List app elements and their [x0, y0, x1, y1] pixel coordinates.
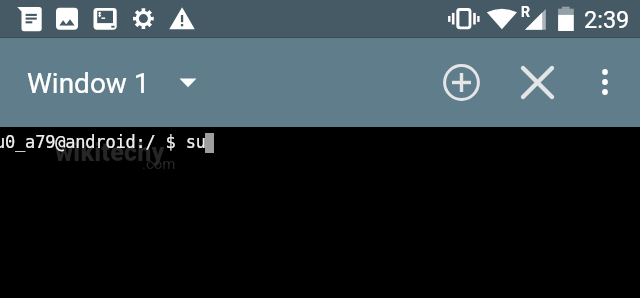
staticText: u0_a79@android:/ $ su [0, 132, 206, 152]
button[interactable]: Close window [523, 68, 552, 97]
staticText: R [521, 4, 530, 20]
button[interactable]: New window [443, 64, 480, 101]
staticText: .com [142, 155, 176, 173]
button[interactable]: More options [595, 62, 615, 102]
button[interactable]: Terminal output [0, 127, 640, 298]
staticText: 2:39 [584, 6, 630, 34]
button[interactable]: Window 1 [0, 37, 202, 127]
staticText: wikitechy [55, 138, 165, 167]
staticText: Window 1 [27, 67, 150, 100]
